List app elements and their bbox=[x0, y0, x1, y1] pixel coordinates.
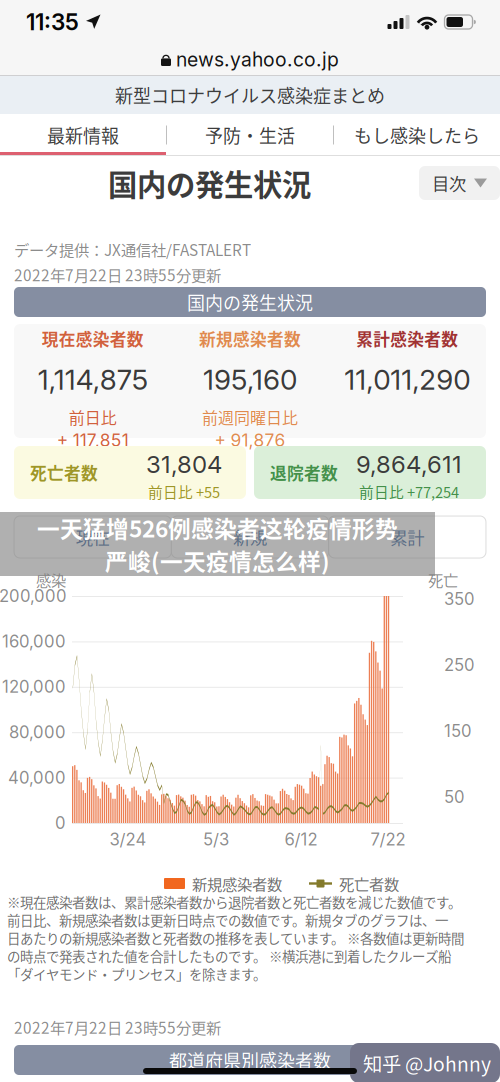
staticText: 1,114,875 bbox=[38, 363, 148, 396]
staticText: 前日比 +55 bbox=[148, 481, 220, 502]
staticText: 知乎 @Johnny bbox=[363, 1049, 491, 1077]
staticText: 150 bbox=[444, 721, 472, 741]
staticText: 11,011,290 bbox=[344, 363, 470, 396]
button[interactable]: 新規 bbox=[171, 516, 329, 558]
staticText: 6/12 bbox=[284, 829, 317, 850]
button[interactable]: 最新情報 bbox=[0, 114, 166, 156]
staticText: ※現在感染者数は、累計感染者数から退院者数と死亡者数を減じた数値です。 bbox=[7, 892, 461, 912]
staticText: 80,000 bbox=[9, 722, 66, 742]
staticText: 死亡者数 bbox=[339, 872, 399, 895]
staticText: 11:35 bbox=[26, 8, 79, 36]
staticText: 前週同曜日比 bbox=[202, 405, 298, 429]
staticText: もし感染したら bbox=[354, 122, 480, 148]
staticText: 一天猛增526例感染者这轮疫情形势 bbox=[37, 511, 398, 544]
staticText: 5/3 bbox=[203, 829, 229, 850]
staticText: 退院者数 bbox=[270, 460, 338, 484]
staticText: 「ダイヤモンド・プリンセス」を除きます。 bbox=[7, 964, 266, 984]
staticText: 350 bbox=[444, 589, 475, 609]
staticText: 3/24 bbox=[109, 829, 146, 850]
staticText: 国内の発生状況 bbox=[187, 289, 313, 315]
staticText: 日あたりの新規感染者数と死者数の推移を表しています。 ※各数値は更新時間 bbox=[7, 928, 464, 948]
staticText: 死亡者数 bbox=[30, 460, 98, 484]
button[interactable]: 累計 bbox=[329, 516, 486, 558]
staticText: 250 bbox=[444, 655, 475, 675]
staticText: news.yahoo.co.jp bbox=[176, 48, 339, 71]
staticText: 0 bbox=[55, 813, 66, 833]
staticText: 新型コロナウイルス感染症まとめ bbox=[115, 82, 385, 108]
staticText: + 117,851 bbox=[57, 430, 129, 451]
staticText: 新規感染者数 bbox=[192, 872, 282, 895]
staticText: 50 bbox=[444, 787, 465, 807]
staticText: 目次 bbox=[432, 170, 466, 196]
staticText: 31,804 bbox=[146, 450, 222, 479]
staticText: の時点で発表された値を合計したものです。 ※横浜港に到着したクルーズ船 bbox=[7, 946, 451, 966]
staticText: 現在 bbox=[76, 524, 110, 550]
staticText: 前日比、新規感染者数は更新日時点での数値です。新規タブのグラフは、一 bbox=[7, 910, 448, 930]
staticText: 累計 bbox=[390, 524, 424, 550]
button[interactable]: 予防・生活 bbox=[167, 114, 333, 156]
staticText: 200,000 bbox=[0, 586, 67, 606]
staticText: 40,000 bbox=[8, 767, 66, 788]
staticText: 前日比 +77,254 bbox=[359, 481, 459, 502]
staticText: 死亡 bbox=[428, 568, 458, 591]
staticText: 国内の発生状況 bbox=[108, 162, 311, 204]
staticText: 120,000 bbox=[2, 677, 66, 697]
staticText: + 91,876 bbox=[214, 430, 285, 451]
button[interactable]: もし感染したら bbox=[334, 114, 500, 156]
staticText: 新規感染者数 bbox=[199, 326, 301, 350]
staticText: 195,160 bbox=[203, 363, 297, 396]
staticText: 2022年7月22日 23時55分更新 bbox=[14, 263, 221, 286]
staticText: 160,000 bbox=[2, 631, 66, 651]
staticText: 7/22 bbox=[370, 829, 405, 850]
button[interactable]: 現在 bbox=[14, 516, 171, 558]
staticText: 感染 bbox=[36, 568, 66, 591]
staticText: 2022年7月22日 23時55分更新 bbox=[14, 1016, 221, 1038]
staticText: 予防・生活 bbox=[205, 122, 295, 148]
staticText: 前日比 bbox=[69, 405, 117, 429]
staticText: 严峻(一天疫情怎么样) bbox=[105, 544, 330, 577]
staticText: 9,864,611 bbox=[356, 450, 462, 479]
staticText: データ提供：JX通信社/FASTALERT bbox=[14, 238, 251, 260]
staticText: 新規 bbox=[233, 524, 267, 550]
staticText: 現在感染者数 bbox=[42, 326, 144, 350]
button[interactable]: 目次 bbox=[419, 166, 500, 200]
staticText: 都道府県別感染者数 bbox=[169, 1047, 331, 1073]
button[interactable]: news.yahoo.co.jp bbox=[0, 44, 500, 75]
staticText: 最新情報 bbox=[47, 122, 119, 148]
staticText: 累計感染者数 bbox=[356, 326, 458, 350]
